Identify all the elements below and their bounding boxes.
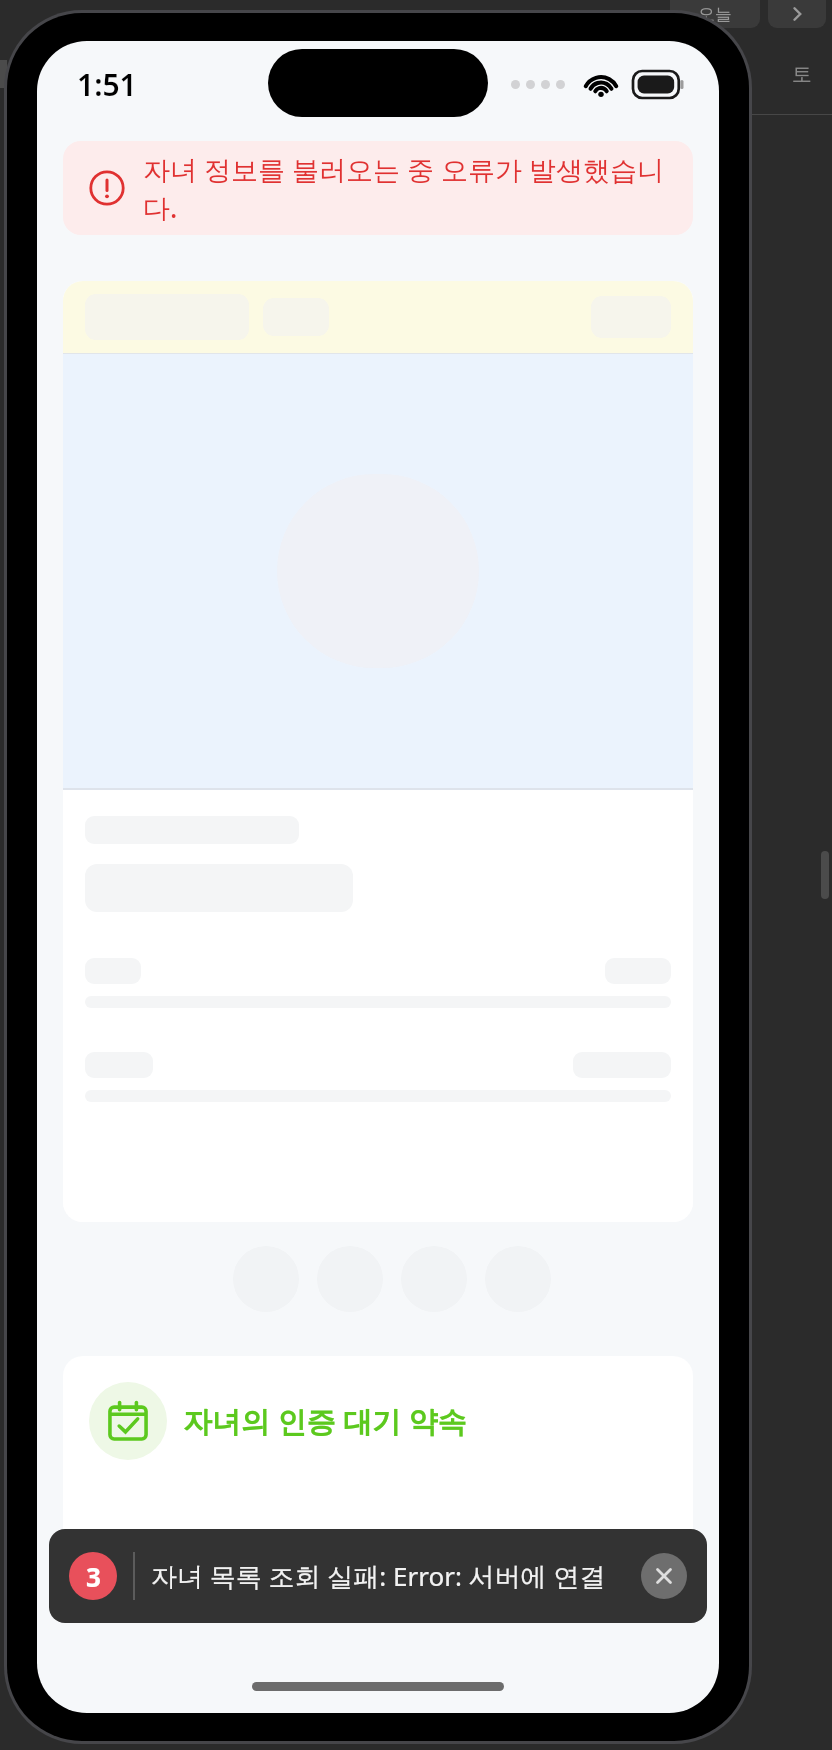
button[interactable]: 자녀의 인증 대기 약속 — [63, 1356, 693, 1590]
staticText: 자녀 목록 조회 실패: Error: 서버에 연결할 수 없습… — [151, 1558, 631, 1594]
staticText: 3 — [86, 1559, 101, 1594]
button[interactable]: 3 — [49, 1529, 707, 1623]
button[interactable]: Next — [768, 0, 826, 28]
button[interactable]: 오늘 — [670, 0, 760, 28]
button[interactable]: 자녀 정보를 불러오는 중 오류가 발생했습니다. — [63, 141, 693, 235]
button[interactable]: Dismiss — [641, 1553, 687, 1599]
staticText: 토 — [792, 62, 812, 87]
staticText: 자녀의 인증 대기 약속 — [183, 1401, 467, 1441]
staticText: 1:51 — [77, 64, 137, 105]
staticText: 자녀 정보를 불러오는 중 오류가 발생했습니다. — [143, 151, 667, 226]
button[interactable] — [63, 281, 693, 1222]
staticText: 오늘 — [698, 4, 732, 25]
